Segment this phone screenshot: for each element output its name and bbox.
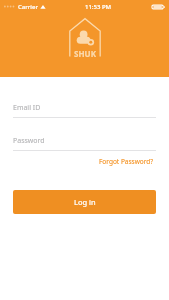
button[interactable]: Forgot Password?	[97, 155, 156, 168]
staticText: 11:53 PM	[85, 3, 112, 11]
staticText: Log in	[74, 197, 96, 207]
staticText: Carrier	[18, 3, 38, 11]
staticText: SHUK	[74, 48, 96, 59]
button[interactable]: Email ID	[13, 103, 156, 118]
button[interactable]: Log in	[13, 190, 156, 214]
staticText: Email ID	[13, 103, 41, 113]
staticText: Password	[13, 136, 45, 146]
staticText: Forgot Password?	[99, 157, 154, 166]
button[interactable]: Password	[13, 136, 156, 151]
